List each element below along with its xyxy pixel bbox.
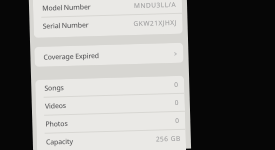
staticText: MNDU3LL/A [134, 0, 177, 10]
button[interactable]: Songs [35, 76, 184, 97]
staticText: 0 [175, 116, 180, 125]
staticText: 256 GB [156, 134, 181, 143]
button[interactable]: Capacity [37, 130, 186, 150]
staticText: 0 [174, 80, 179, 89]
button[interactable]: Serial Number [33, 14, 183, 35]
staticText: Capacity [46, 137, 74, 148]
button[interactable]: Model Number [33, 0, 182, 17]
button[interactable]: Videos [36, 94, 185, 115]
staticText: Videos [45, 101, 67, 112]
other: Open coverage details [172, 51, 178, 57]
staticText: Coverage Expired [43, 51, 100, 63]
button[interactable]: Photos [36, 112, 185, 133]
staticText: GKW21XJHXJ [133, 18, 178, 28]
staticText: Model Number [42, 2, 91, 14]
staticText: Photos [45, 119, 68, 130]
staticText: 0 [175, 98, 180, 107]
staticText: Serial Number [42, 20, 89, 32]
staticText: Songs [44, 83, 64, 94]
button[interactable]: Coverage Expired [34, 45, 184, 66]
